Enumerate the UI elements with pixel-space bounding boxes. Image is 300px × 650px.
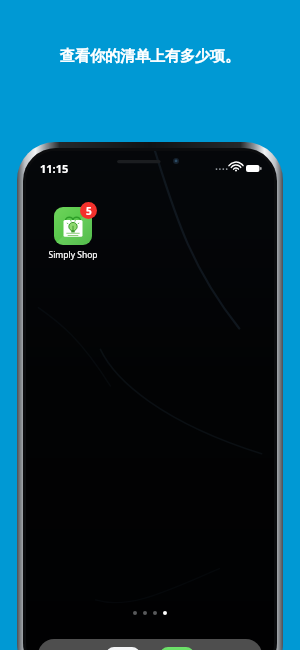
staticText: Simply Shop [48,249,98,261]
button[interactable]: Messages [160,647,194,650]
button[interactable]: Safari [106,647,140,650]
button[interactable]: 5 [48,207,98,261]
staticText: 11:15 [40,161,69,176]
staticText: 5 [86,204,92,218]
staticText: 查看你的清单上有多少项。 [12,47,288,66]
